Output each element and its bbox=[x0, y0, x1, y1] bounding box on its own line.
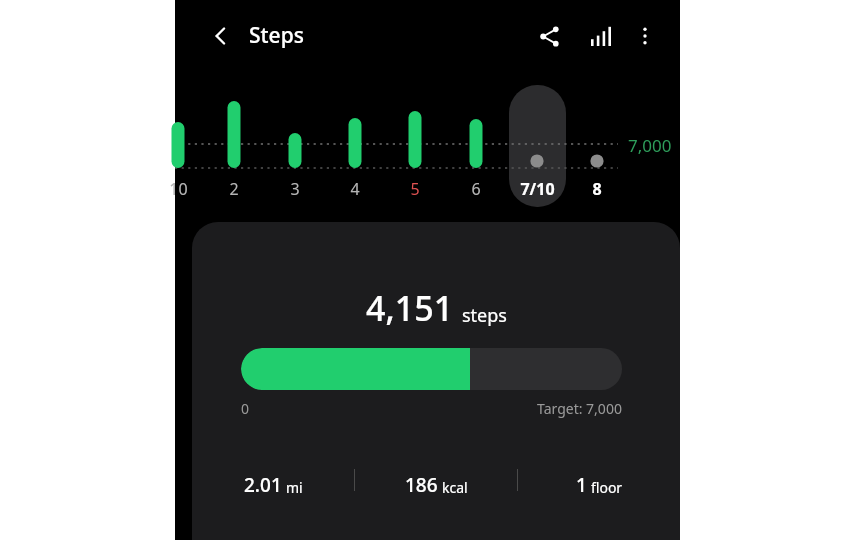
staticText: kcal bbox=[442, 478, 468, 497]
staticText: 5 bbox=[410, 178, 420, 200]
button[interactable]: Back bbox=[199, 14, 243, 58]
staticText: floor bbox=[591, 478, 623, 497]
button[interactable]: Chart bbox=[579, 14, 623, 58]
staticText: 7,000 bbox=[628, 134, 672, 157]
staticText: steps bbox=[462, 303, 507, 328]
button[interactable]: 186 bbox=[355, 462, 517, 498]
staticText: 2.01 bbox=[244, 472, 282, 498]
staticText: 4 bbox=[350, 178, 360, 200]
staticText: mi bbox=[286, 478, 303, 497]
staticText: 4,151 bbox=[366, 285, 454, 331]
staticText: Target: 7,000 bbox=[537, 399, 622, 418]
button[interactable]: Share bbox=[527, 14, 571, 58]
staticText: 10 bbox=[169, 178, 188, 200]
staticText: Steps bbox=[249, 21, 304, 50]
staticText: 186 bbox=[405, 472, 438, 498]
button[interactable]: More options bbox=[623, 14, 667, 58]
button[interactable]: 1 bbox=[518, 462, 680, 498]
staticText: 0 bbox=[241, 399, 250, 418]
button[interactable]: 2.01 bbox=[192, 462, 354, 498]
staticText: 2 bbox=[229, 178, 239, 200]
staticText: 7/10 bbox=[520, 178, 555, 200]
button[interactable] bbox=[241, 348, 622, 390]
staticText: 6 bbox=[471, 178, 481, 200]
button[interactable] bbox=[509, 85, 566, 207]
staticText: 3 bbox=[290, 178, 300, 200]
staticText: 8 bbox=[592, 178, 602, 200]
staticText: 1 bbox=[576, 472, 587, 498]
